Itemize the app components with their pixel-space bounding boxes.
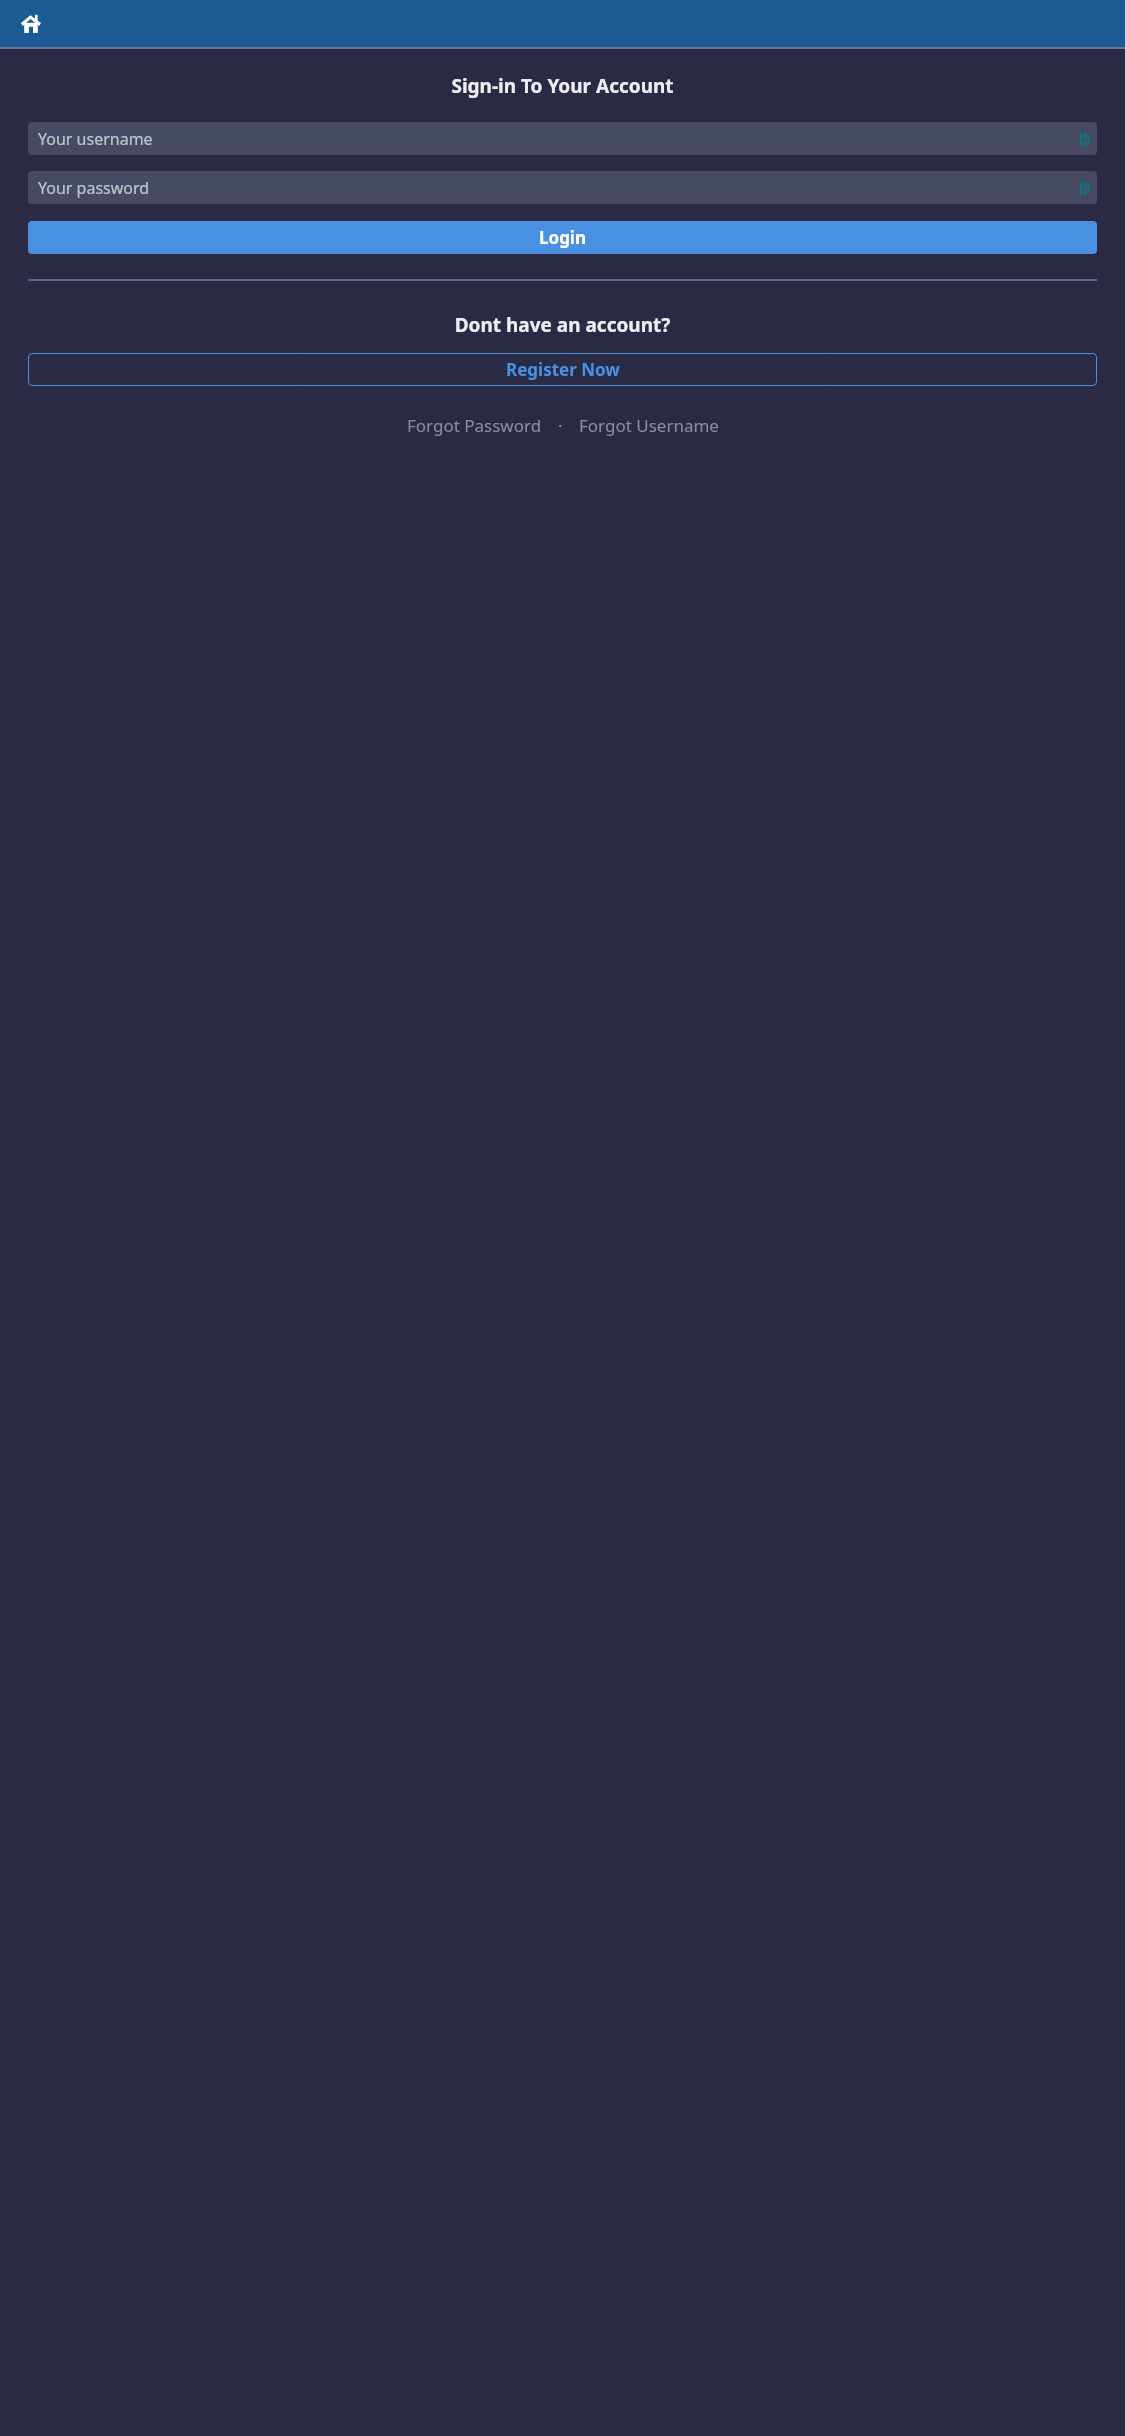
staticText: Register Now bbox=[506, 358, 620, 381]
staticText: Your password bbox=[38, 177, 150, 199]
button[interactable]: Autofill bbox=[1079, 132, 1091, 146]
button[interactable]: Home bbox=[10, 3, 52, 45]
staticText: Sign-in To Your Account bbox=[0, 73, 1125, 99]
button[interactable]: Your password bbox=[28, 171, 1097, 204]
staticText: Dont have an account? bbox=[0, 312, 1125, 338]
staticText: Login bbox=[539, 226, 587, 249]
staticText: Forgot Username bbox=[579, 414, 719, 437]
staticText: Your username bbox=[38, 128, 153, 150]
button[interactable]: Forgot Password bbox=[401, 410, 548, 441]
button[interactable]: Your username bbox=[28, 122, 1097, 155]
staticText: Forgot Password bbox=[407, 414, 542, 437]
button[interactable]: Autofill bbox=[1079, 181, 1091, 195]
button[interactable]: Forgot Username bbox=[573, 410, 725, 441]
button[interactable]: Login bbox=[28, 221, 1097, 254]
button[interactable]: Register Now bbox=[28, 353, 1097, 386]
staticText: · bbox=[558, 414, 563, 437]
